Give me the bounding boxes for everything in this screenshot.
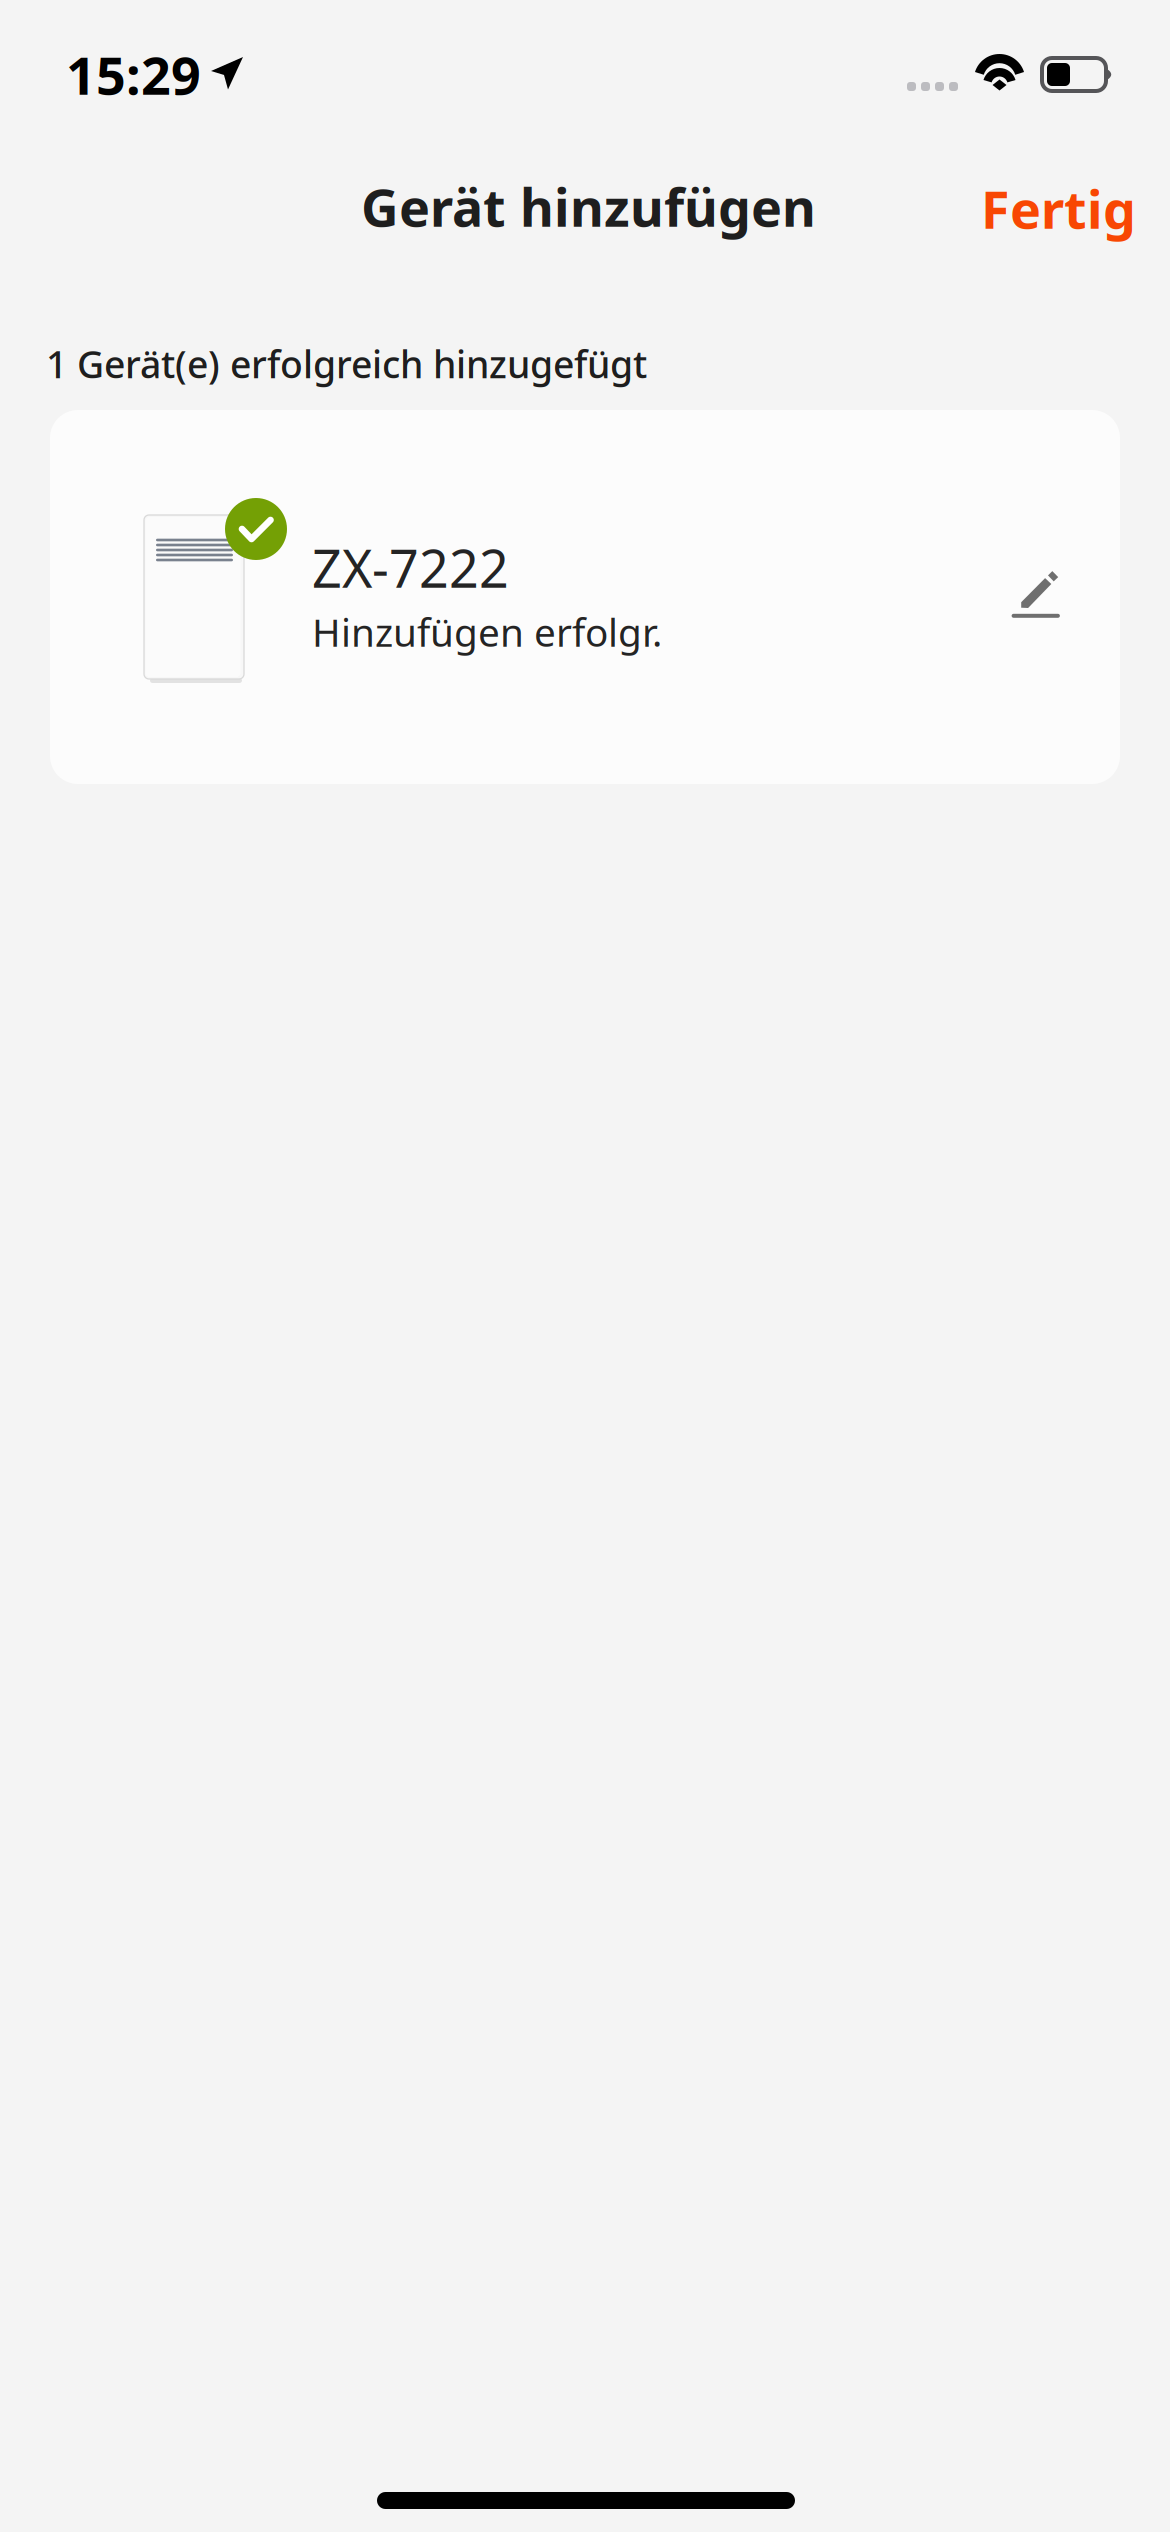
staticText: ZX-7222: [312, 533, 509, 602]
staticText: 15:29: [66, 40, 201, 109]
button[interactable]: ZX-7222: [50, 410, 1120, 784]
staticText: 1 Gerät(e) erfolgreich hinzugefügt: [46, 339, 647, 389]
staticText: Hinzufügen erfolgr.: [312, 606, 662, 657]
button[interactable]: Fertig: [959, 156, 1158, 261]
button[interactable]: Gerät umbenennen: [986, 546, 1087, 646]
staticText: Gerät hinzufügen: [361, 172, 816, 241]
staticText: Fertig: [981, 174, 1136, 243]
